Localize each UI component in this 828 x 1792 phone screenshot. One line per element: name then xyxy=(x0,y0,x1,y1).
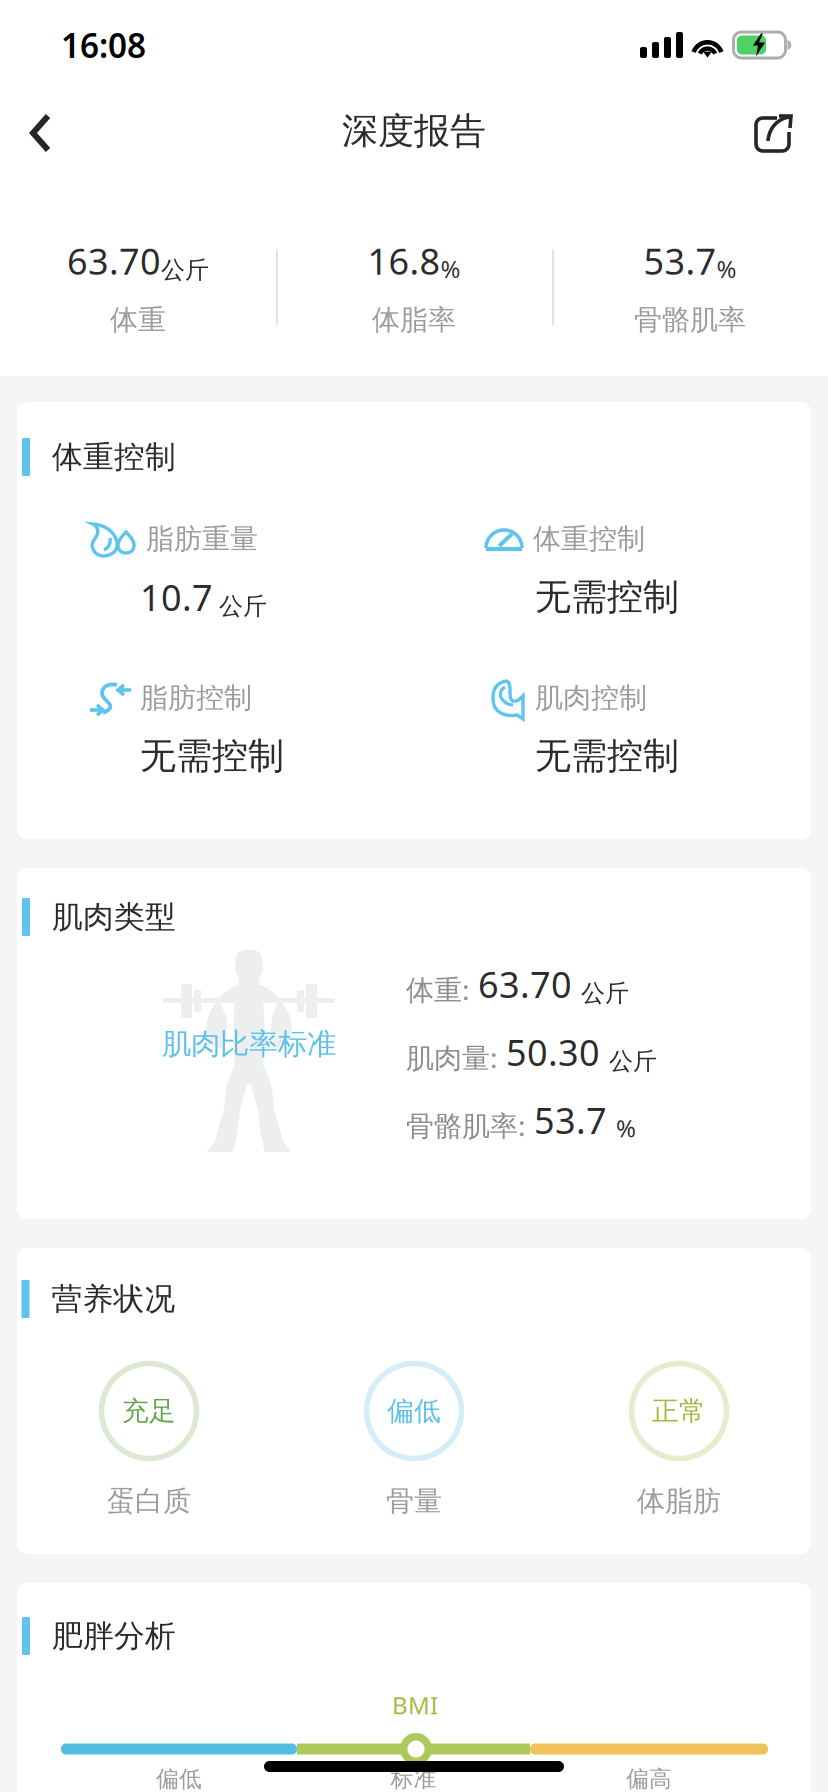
staticText: % xyxy=(616,1112,636,1144)
staticText: 脂肪重量 xyxy=(146,522,258,556)
staticText: 16:08 xyxy=(61,23,146,67)
staticText: 体重控制 xyxy=(533,522,645,556)
staticText: 体重控制 xyxy=(52,438,176,476)
staticText: % xyxy=(440,253,460,285)
staticText: 50.30 xyxy=(506,1028,600,1076)
staticText: 充足 xyxy=(122,1395,176,1427)
button[interactable]: 返回 xyxy=(0,101,79,187)
staticText: 偏低 xyxy=(387,1395,441,1427)
staticText: 63.70 xyxy=(478,960,572,1008)
staticText: 骨骼肌率: xyxy=(406,1107,526,1144)
staticText: 16.8 xyxy=(367,237,440,285)
staticText: 体重: xyxy=(406,971,470,1008)
staticText: BMI xyxy=(392,1689,438,1721)
staticText: 蛋白质 xyxy=(107,1484,191,1518)
staticText: 骨骼肌率 xyxy=(634,303,746,337)
staticText: 偏高 xyxy=(626,1765,672,1792)
staticText: % xyxy=(716,253,736,285)
staticText: 53.7 xyxy=(534,1096,607,1144)
staticText: 肥胖分析 xyxy=(52,1617,176,1655)
staticText: 正常 xyxy=(652,1395,706,1427)
staticText: 公斤 xyxy=(161,255,209,285)
staticText: 营养状况 xyxy=(51,1280,175,1318)
staticText: 体重 xyxy=(110,303,166,337)
staticText: 公斤 xyxy=(609,1046,657,1076)
staticText: 63.70 xyxy=(67,237,161,285)
staticText: 体脂肪 xyxy=(637,1484,721,1518)
staticText: 肌肉控制 xyxy=(535,681,647,715)
staticText: 无需控制 xyxy=(140,734,284,778)
staticText: 肌肉类型 xyxy=(52,898,176,936)
staticText: 体脂率 xyxy=(372,303,456,337)
staticText: 脂肪控制 xyxy=(140,681,252,715)
staticText: 公斤 xyxy=(581,978,629,1008)
staticText: 公斤 xyxy=(219,591,267,621)
staticText: 深度报告 xyxy=(342,109,486,153)
staticText: 53.7 xyxy=(643,237,716,285)
staticText: 骨量 xyxy=(386,1484,442,1518)
staticText: 肌肉量: xyxy=(406,1039,498,1076)
button[interactable]: 分享 xyxy=(727,103,828,185)
staticText: 偏低 xyxy=(156,1765,202,1792)
staticText: 标准 xyxy=(390,1765,436,1792)
staticText: 无需控制 xyxy=(535,734,679,778)
staticText: 肌肉比率标准 xyxy=(162,1026,336,1062)
staticText: 无需控制 xyxy=(535,575,679,619)
staticText: 10.7 xyxy=(140,573,213,621)
